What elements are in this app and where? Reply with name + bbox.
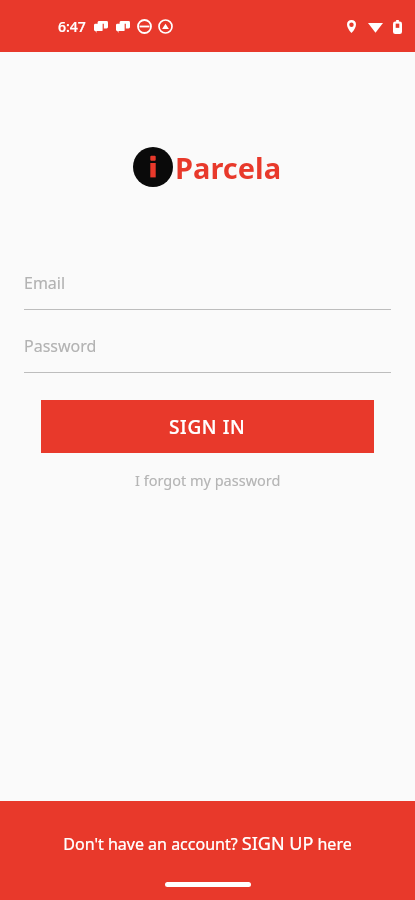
other: Wi-Fi xyxy=(368,19,383,34)
staticText: 6:47 xyxy=(58,17,86,36)
staticText: Password xyxy=(24,335,97,357)
staticText: Don't have an account? SIGN UP here xyxy=(63,831,352,856)
button[interactable]: I forgot my password xyxy=(123,467,293,493)
button[interactable]: Don't have an account? SIGN UP here xyxy=(0,801,415,900)
other: Do not disturb xyxy=(138,20,151,33)
staticText: Email xyxy=(24,272,66,294)
other: Battery xyxy=(393,20,402,34)
staticText: Parcela xyxy=(175,148,282,187)
staticText: I forgot my password xyxy=(135,470,281,490)
other: Drive xyxy=(159,20,172,33)
button[interactable]: Password xyxy=(0,320,415,373)
other: Messages xyxy=(116,21,130,33)
button[interactable]: Email xyxy=(0,257,415,310)
staticText: SIGN IN xyxy=(169,414,246,440)
button[interactable]: SIGN IN xyxy=(41,400,374,453)
other: Location xyxy=(345,20,358,33)
other: Messages xyxy=(94,21,108,33)
